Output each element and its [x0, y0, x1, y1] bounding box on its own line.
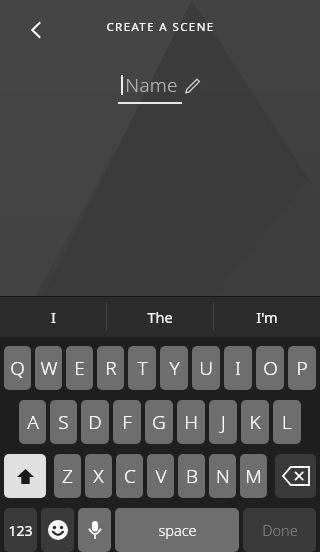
button[interactable]: T — [128, 346, 156, 390]
button[interactable]: I — [0, 296, 106, 337]
staticText: S — [58, 409, 69, 435]
button[interactable]: R — [97, 346, 124, 390]
button[interactable]: Q — [4, 346, 31, 390]
staticText: L — [282, 409, 292, 435]
staticText: W — [40, 355, 58, 381]
staticText: U — [199, 355, 213, 381]
button[interactable]: P — [288, 346, 316, 390]
button[interactable]: H — [177, 400, 205, 444]
button[interactable]: Shift — [4, 454, 46, 498]
button[interactable]: Y — [160, 346, 188, 390]
button[interactable]: X — [85, 454, 112, 498]
staticText: Q — [10, 355, 25, 381]
staticText: The — [147, 307, 173, 327]
staticText: C — [124, 463, 136, 489]
staticText: E — [74, 355, 85, 381]
staticText: M — [245, 463, 262, 489]
staticText: H — [184, 409, 198, 435]
button[interactable]: K — [241, 400, 269, 444]
button[interactable]: F — [113, 400, 141, 444]
button[interactable]: I — [224, 346, 252, 390]
button[interactable]: Emoji — [41, 508, 74, 552]
staticText: G — [152, 409, 166, 435]
button[interactable]: N — [209, 454, 236, 498]
button[interactable]: E — [66, 346, 93, 390]
button[interactable]: O — [256, 346, 284, 390]
staticText: N — [216, 463, 230, 489]
button[interactable]: W — [35, 346, 62, 390]
button[interactable]: S — [50, 400, 77, 444]
button[interactable]: Done — [243, 508, 316, 552]
button[interactable]: G — [145, 400, 173, 444]
button[interactable]: L — [273, 400, 301, 444]
button[interactable]: U — [192, 346, 220, 390]
button[interactable]: V — [147, 454, 174, 498]
staticText: Z — [62, 463, 73, 489]
staticText: Y — [169, 355, 180, 381]
staticText: 123 — [8, 521, 33, 540]
staticText: P — [296, 355, 308, 381]
button[interactable]: M — [240, 454, 267, 498]
button[interactable]: Z — [54, 454, 81, 498]
staticText: V — [155, 463, 167, 489]
button[interactable]: I'm — [214, 296, 320, 337]
staticText: D — [88, 409, 102, 435]
button[interactable]: B — [178, 454, 205, 498]
staticText: I — [235, 355, 241, 381]
staticText: Name — [125, 72, 178, 98]
staticText: I'm — [256, 307, 278, 327]
staticText: Done — [262, 520, 298, 540]
button[interactable]: J — [209, 400, 237, 444]
staticText: R — [105, 355, 117, 381]
button[interactable]: A — [19, 400, 46, 444]
staticText: I — [51, 307, 56, 327]
staticText: K — [249, 409, 261, 435]
button[interactable]: The — [107, 296, 213, 337]
button[interactable]: D — [81, 400, 109, 444]
button[interactable]: Name — [121, 72, 200, 98]
staticText: space — [158, 520, 197, 540]
button[interactable]: C — [116, 454, 143, 498]
staticText: F — [122, 409, 132, 435]
staticText: A — [27, 409, 39, 435]
button[interactable]: 123 — [4, 508, 37, 552]
staticText: B — [186, 463, 198, 489]
button[interactable]: Back — [16, 10, 56, 50]
staticText: X — [93, 463, 104, 489]
staticText: T — [137, 355, 148, 381]
button[interactable]: Backspace — [275, 454, 316, 498]
staticText: J — [221, 409, 226, 435]
staticText: CREATE A SCENE — [106, 19, 215, 35]
button[interactable]: Voice input — [78, 508, 111, 552]
staticText: O — [263, 355, 278, 381]
button[interactable]: space — [115, 508, 239, 552]
